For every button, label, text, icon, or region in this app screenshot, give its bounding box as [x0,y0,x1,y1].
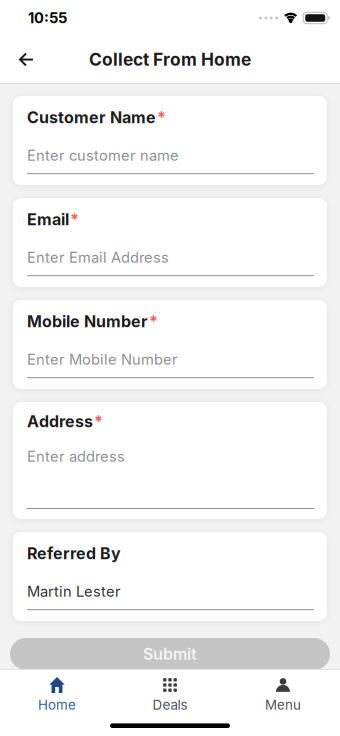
button[interactable]: Deals [113,677,226,713]
staticText: Martin Lester [27,583,121,600]
staticText: Enter customer name [27,147,179,164]
staticText: * [70,210,79,229]
staticText: Enter Mobile Number [27,351,178,368]
staticText: Deals [152,697,187,713]
staticText: Enter address [27,448,125,465]
staticText: Mobile Number [27,312,148,331]
staticText: Customer Name [27,108,156,127]
staticText: Address [27,412,93,431]
staticText: Email [27,210,69,229]
staticText: * [149,312,158,331]
staticText: * [157,108,166,127]
staticText: Collect From Home [89,49,251,70]
button[interactable]: Back [0,38,34,80]
button[interactable]: Submit [10,638,330,670]
staticText: Home [38,697,76,713]
button[interactable]: Home [0,677,113,713]
staticText: Referred By [27,544,121,563]
staticText: 10:55 [28,9,67,27]
staticText: Submit [143,645,197,663]
staticText: Menu [265,697,301,713]
button[interactable]: Menu [226,677,339,713]
staticText: Enter Email Address [27,249,169,266]
staticText: * [94,412,103,431]
